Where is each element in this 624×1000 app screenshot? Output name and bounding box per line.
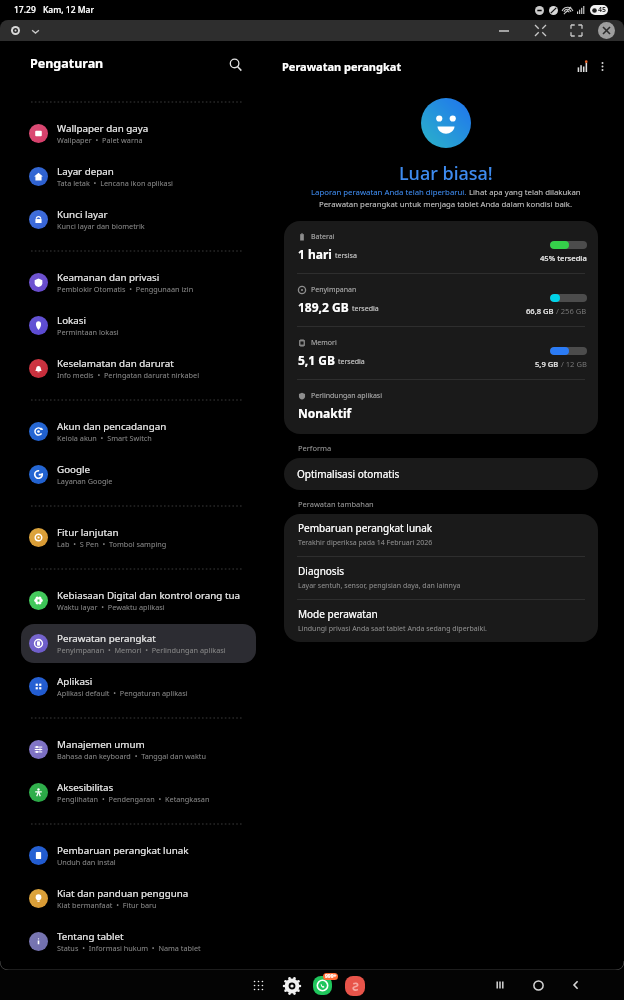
staticText: 5,9 GB (535, 359, 559, 369)
staticText: Nonaktif (298, 405, 352, 421)
staticText: Pemblokir Otomatis • Penggunaan izin (57, 284, 194, 294)
staticText: 1 hari (298, 246, 332, 262)
staticText: 5,1 GB (298, 352, 335, 368)
staticText: Lihat apa yang telah dilakukan (467, 187, 581, 198)
staticText: Unduh dan instal (57, 857, 116, 867)
staticText: Penyimpanan (311, 285, 357, 295)
staticText: / 12 GB (559, 359, 587, 369)
button[interactable]: Manajemen umum (21, 730, 256, 769)
staticText: Baterai (311, 232, 335, 242)
staticText: Kelola akun • Smart Switch (57, 433, 152, 443)
button[interactable]: All apps (249, 976, 268, 995)
button[interactable]: Lokasi (21, 306, 256, 345)
staticText: Fitur lanjutan (57, 526, 119, 539)
staticText: Keamanan dan privasi (57, 271, 160, 284)
staticText: Aksesibilitas (57, 781, 114, 794)
staticText: tersedia (352, 304, 379, 314)
button[interactable]: Baterai (284, 221, 598, 273)
button[interactable]: Pembaruan perangkat lunak (284, 514, 598, 556)
staticText: Status • Informasi hukum • Nama tablet (57, 943, 201, 953)
button[interactable]: Expand (28, 24, 42, 38)
button[interactable]: Memori (284, 327, 598, 379)
button[interactable]: Mode perawatan (284, 600, 598, 642)
button[interactable]: Home (526, 973, 550, 997)
staticText: Google (57, 463, 91, 476)
button[interactable]: Akun dan pencadangan (21, 412, 256, 451)
staticText: tersedia (338, 357, 365, 367)
staticText: / 256 GB (554, 306, 587, 316)
staticText: Akun dan pencadangan (57, 420, 167, 433)
button[interactable]: Optimalisasi otomatis (284, 458, 598, 490)
button[interactable]: Fitur lanjutan (21, 518, 256, 557)
staticText: Lindungi privasi Anda saat tablet Anda s… (298, 624, 487, 634)
staticText: Kunci layar (57, 208, 108, 221)
staticText: Luar biasa! (399, 161, 493, 186)
button[interactable]: Usage statistics (574, 58, 591, 75)
staticText: Mode perawatan (298, 607, 378, 621)
staticText: 999+ (325, 973, 337, 980)
staticText: 17.29 (14, 4, 36, 16)
staticText: Tata letak • Lencana ikon aplikasi (57, 178, 174, 188)
button[interactable]: Kebiasaan Digital dan kontrol orang tua (21, 581, 256, 620)
staticText: Info medis • Peringatan darurat nirkabel (57, 370, 200, 380)
button[interactable]: Samsung app (345, 976, 365, 996)
staticText: Layar depan (57, 165, 114, 178)
staticText: Manajemen umum (57, 738, 145, 751)
staticText: Lokasi (57, 314, 87, 327)
button[interactable]: Maximize (564, 20, 588, 41)
staticText: 189,2 GB (298, 299, 349, 315)
button[interactable]: More options (594, 58, 611, 75)
staticText: Pengaturan (30, 55, 104, 72)
button[interactable]: Minimize (492, 20, 516, 41)
button[interactable]: Close (598, 22, 615, 39)
staticText: Kebiasaan Digital dan kontrol orang tua (57, 589, 240, 602)
staticText: Penglihatan • Pendengaran • Ketangkasan (57, 794, 210, 804)
staticText: Permintaan lokasi (57, 327, 119, 337)
button[interactable]: Search (224, 53, 246, 75)
staticText: Perlindungan aplikasi (311, 391, 383, 401)
button[interactable]: Settings (282, 976, 302, 996)
staticText: 66,8 GB (526, 306, 554, 316)
staticText: Lab • S Pen • Tombol samping (57, 539, 167, 549)
staticText: Aplikasi default • Pengaturan aplikasi (57, 688, 188, 698)
staticText: Wallpaper dan gaya (57, 122, 149, 135)
staticText: Kiat dan panduan pengguna (57, 887, 189, 900)
staticText: Pembaruan perangkat lunak (57, 844, 189, 857)
button[interactable]: Perawatan perangkat (21, 624, 256, 663)
staticText: Memori (311, 338, 337, 348)
staticText: tersisa (335, 251, 357, 261)
button[interactable]: Kunci layar (21, 200, 256, 239)
button[interactable]: Aplikasi (21, 667, 256, 706)
button[interactable]: Layar depan (21, 157, 256, 196)
staticText: Layanan Google (57, 476, 113, 486)
button[interactable]: Diagnosis (284, 557, 598, 599)
staticText: 45% tersedia (540, 253, 587, 263)
button[interactable]: Keselamatan dan darurat (21, 349, 256, 388)
staticText: Perawatan perangkat untuk menjaga tablet… (319, 199, 573, 210)
button[interactable]: Wallpaper dan gaya (21, 114, 256, 153)
staticText: Layar sentuh, sensor, pengisian daya, da… (298, 581, 461, 591)
button[interactable]: Tentang tablet (21, 922, 256, 961)
button[interactable]: Google (21, 455, 256, 494)
staticText: Laporan perawatan Anda telah diperbarui. (311, 187, 467, 198)
staticText: Perawatan tambahan (298, 499, 374, 509)
button[interactable]: WhatsApp (313, 976, 332, 995)
staticText: Kam, 12 Mar (43, 4, 95, 16)
staticText: Keselamatan dan darurat (57, 357, 174, 370)
staticText: Tentang tablet (57, 930, 124, 943)
button[interactable]: Keamanan dan privasi (21, 263, 256, 302)
staticText: Performa (298, 443, 332, 453)
button[interactable]: Recent apps (488, 973, 512, 997)
button[interactable]: Restore down (528, 20, 552, 41)
button[interactable]: Perlindungan aplikasi (284, 380, 598, 434)
button[interactable]: Aksesibilitas (21, 773, 256, 812)
staticText: Aplikasi (57, 675, 93, 688)
other: App icon (11, 26, 20, 35)
button[interactable]: Pembaruan perangkat lunak (21, 836, 256, 875)
button[interactable]: Penyimpanan (284, 274, 598, 326)
button[interactable]: Back (564, 973, 588, 997)
staticText: Diagnosis (298, 564, 345, 578)
staticText: Terakhir diperiksa pada 14 Februari 2026 (298, 538, 433, 548)
button[interactable]: Kiat dan panduan pengguna (21, 879, 256, 918)
staticText: Penyimpanan • Memori • Perlindungan apli… (57, 645, 226, 655)
